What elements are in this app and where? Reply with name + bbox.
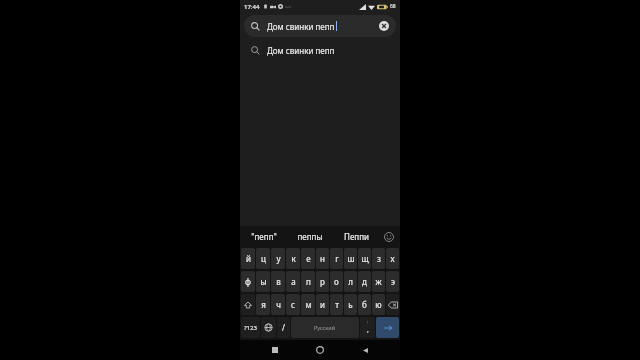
staticText: "пепп" — [251, 231, 277, 242]
staticText: ! — [367, 320, 369, 325]
button[interactable]: с — [286, 294, 300, 315]
button[interactable]: ц — [256, 248, 270, 269]
button[interactable]: Emoji — [379, 226, 399, 247]
button[interactable]: ?123 — [241, 317, 260, 338]
button[interactable]: д — [358, 271, 371, 292]
button[interactable]: / — [277, 317, 290, 338]
staticText: ю — [375, 299, 382, 310]
button[interactable]: ч — [271, 294, 285, 315]
button[interactable]: щ — [358, 248, 371, 269]
button[interactable]: ж — [372, 271, 385, 292]
button[interactable]: Recent apps — [265, 340, 285, 360]
staticText: х — [390, 253, 395, 264]
staticText: Дом свинки пепп — [267, 21, 335, 32]
button[interactable]: Shift — [241, 294, 255, 315]
button[interactable]: м — [301, 294, 315, 315]
button[interactable]: б — [358, 294, 371, 315]
staticText: л — [348, 276, 353, 287]
button[interactable]: ш — [344, 248, 357, 269]
staticText: э — [391, 276, 395, 287]
staticText: щ — [361, 253, 369, 264]
button[interactable]: л — [344, 271, 357, 292]
button[interactable]: "пепп" — [241, 226, 287, 247]
button[interactable]: Дом свинки пепп — [240, 40, 400, 60]
button[interactable]: ! — [360, 317, 375, 338]
staticText: я — [261, 299, 266, 310]
button[interactable]: т — [330, 294, 343, 315]
button[interactable]: а — [286, 271, 300, 292]
button[interactable]: ю — [372, 294, 385, 315]
staticText: и — [320, 299, 325, 310]
button[interactable]: я — [256, 294, 270, 315]
button[interactable]: Back — [355, 340, 375, 360]
staticText: Пеппи — [344, 231, 369, 242]
staticText: м — [305, 299, 312, 310]
staticText: 68 — [390, 3, 396, 10]
staticText: е — [306, 253, 311, 264]
staticText: б — [362, 299, 367, 310]
staticText: в — [276, 276, 281, 287]
button[interactable]: ь — [344, 294, 357, 315]
button[interactable]: Change language — [261, 317, 276, 338]
staticText: / — [282, 322, 285, 333]
button[interactable]: ы — [256, 271, 270, 292]
staticText: пеппы — [297, 231, 323, 242]
staticText: ж — [375, 276, 382, 287]
staticText: ч — [276, 299, 281, 310]
button[interactable]: Search — [376, 317, 399, 338]
staticText: ?123 — [244, 324, 257, 332]
button[interactable]: е — [301, 248, 315, 269]
button[interactable]: р — [316, 271, 329, 292]
staticText: г — [335, 253, 339, 264]
button[interactable]: к — [286, 248, 300, 269]
staticText: а — [291, 276, 296, 287]
staticText: ц — [261, 253, 266, 264]
button[interactable]: п — [301, 271, 315, 292]
button[interactable]: ф — [241, 271, 255, 292]
button[interactable]: у — [271, 248, 285, 269]
staticText: д — [362, 276, 367, 287]
button[interactable]: г — [330, 248, 343, 269]
button[interactable]: Дом свинки пепп — [244, 15, 396, 37]
staticText: ф — [245, 276, 251, 287]
staticText: о — [334, 276, 339, 287]
button[interactable]: й — [241, 248, 255, 269]
staticText: , — [367, 325, 369, 335]
staticText: 17:44 — [244, 3, 260, 11]
staticText: к — [291, 253, 296, 264]
button[interactable]: э — [386, 271, 399, 292]
staticText: п — [306, 276, 311, 287]
staticText: ь — [348, 299, 353, 310]
staticText: ы — [260, 276, 267, 287]
staticText: й — [246, 253, 251, 264]
staticText: с — [291, 299, 295, 310]
staticText: Дом свинки пепп — [267, 45, 335, 56]
staticText: з — [377, 253, 381, 264]
button[interactable]: в — [271, 271, 285, 292]
button[interactable]: Home — [310, 340, 330, 360]
button[interactable]: Clear search — [377, 19, 391, 33]
button[interactable]: х — [386, 248, 399, 269]
button[interactable]: з — [372, 248, 385, 269]
staticText: ш — [347, 253, 355, 264]
staticText: т — [335, 299, 339, 310]
button[interactable]: Backspace — [386, 294, 399, 315]
button[interactable]: пеппы — [287, 226, 333, 247]
staticText: Русский — [314, 324, 336, 331]
button[interactable]: и — [316, 294, 329, 315]
button[interactable]: о — [330, 271, 343, 292]
staticText: р — [320, 276, 325, 287]
button[interactable]: н — [316, 248, 329, 269]
button[interactable]: Пеппи — [333, 226, 379, 247]
staticText: у — [276, 253, 281, 264]
staticText: н — [320, 253, 325, 264]
button[interactable]: Space — [291, 317, 359, 338]
